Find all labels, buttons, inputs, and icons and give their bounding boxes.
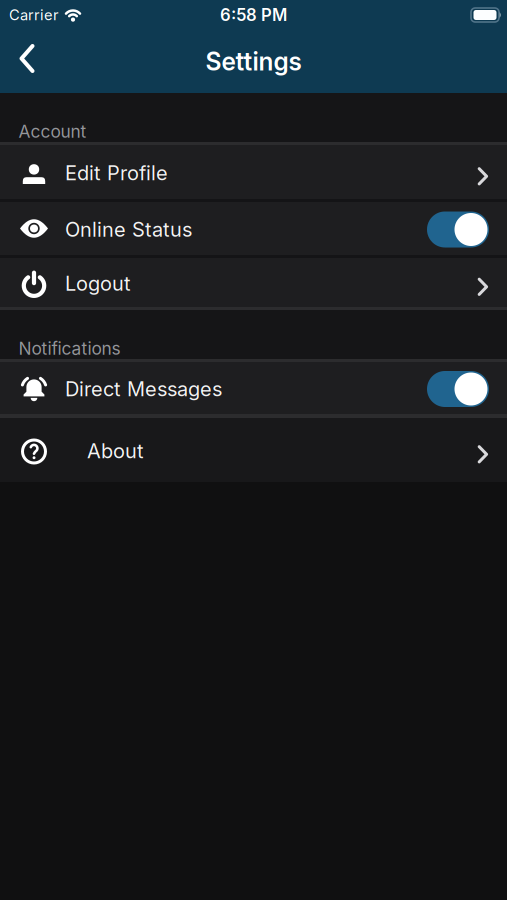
staticText: Carrier <box>9 6 59 24</box>
staticText: Edit Profile <box>65 161 168 185</box>
button[interactable]: About <box>0 418 507 482</box>
button[interactable]: Back <box>0 43 35 79</box>
button[interactable]: Logout <box>0 258 507 307</box>
button[interactable]: Online Status <box>427 211 489 247</box>
staticText: Notifications <box>18 338 120 359</box>
button[interactable]: Direct Messages <box>427 371 489 407</box>
staticText: Online Status <box>65 217 192 242</box>
staticText: Account <box>18 121 86 142</box>
staticText: Direct Messages <box>65 377 222 401</box>
staticText: Settings <box>205 47 301 76</box>
staticText: About <box>87 439 144 463</box>
staticText: Logout <box>65 271 131 296</box>
button[interactable]: Edit Profile <box>0 145 507 199</box>
staticText: 6:58 PM <box>220 5 287 25</box>
